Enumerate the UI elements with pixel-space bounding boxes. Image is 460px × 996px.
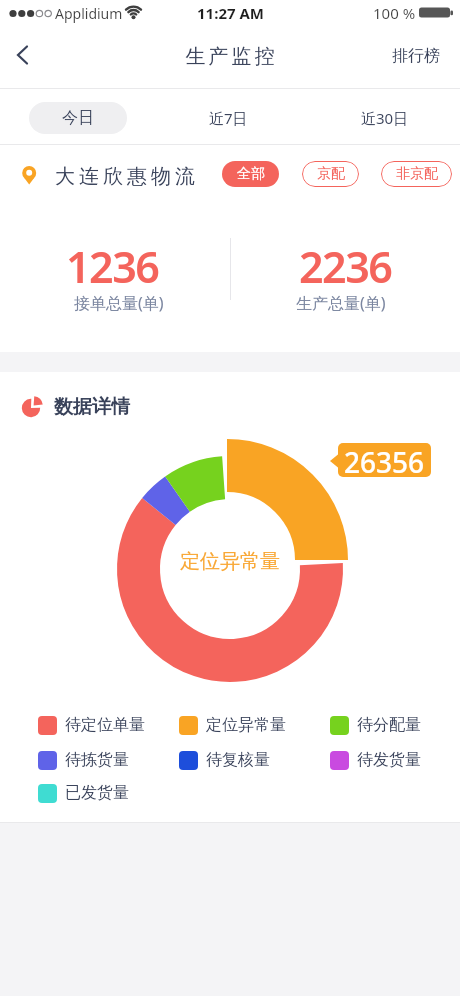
staticText: Applidium: [55, 4, 123, 23]
button[interactable]: 京配: [302, 161, 359, 187]
button[interactable]: 26356: [338, 443, 431, 477]
staticText: 今日: [62, 108, 94, 128]
staticText: 1236: [66, 237, 159, 293]
staticText: 已发货量: [65, 783, 129, 803]
button[interactable]: 今日: [29, 102, 127, 134]
staticText: 2236: [299, 237, 392, 293]
staticText: 待拣货量: [65, 750, 129, 770]
button[interactable]: 非京配: [381, 161, 452, 187]
button[interactable]: 近7日: [183, 102, 273, 134]
staticText: 26356: [344, 443, 425, 477]
staticText: 近7日: [209, 108, 248, 128]
staticText: 待发货量: [357, 750, 421, 770]
staticText: 11:27 AM: [197, 3, 264, 23]
button[interactable]: [10, 44, 36, 68]
staticText: 近30日: [361, 108, 409, 128]
button[interactable]: 近30日: [340, 102, 430, 134]
staticText: 待复核量: [206, 750, 270, 770]
staticText: 排行榜: [392, 46, 440, 66]
staticText: 非京配: [396, 165, 438, 183]
staticText: 生产监控: [184, 44, 276, 69]
staticText: 数据详情: [54, 395, 130, 419]
staticText: 大连欣惠物流: [53, 164, 197, 189]
staticText: 待定位单量: [65, 715, 145, 735]
staticText: 全部: [237, 165, 265, 183]
staticText: 京配: [317, 165, 345, 183]
staticText: 定位异常量: [180, 549, 280, 574]
button[interactable]: 全部: [222, 161, 279, 187]
staticText: 100 %: [373, 3, 416, 23]
staticText: 定位异常量: [206, 715, 286, 735]
button[interactable]: 排行榜: [376, 40, 456, 72]
staticText: 生产总量(单): [296, 292, 386, 314]
staticText: 接单总量(单): [74, 292, 164, 314]
staticText: 待分配量: [357, 715, 421, 735]
